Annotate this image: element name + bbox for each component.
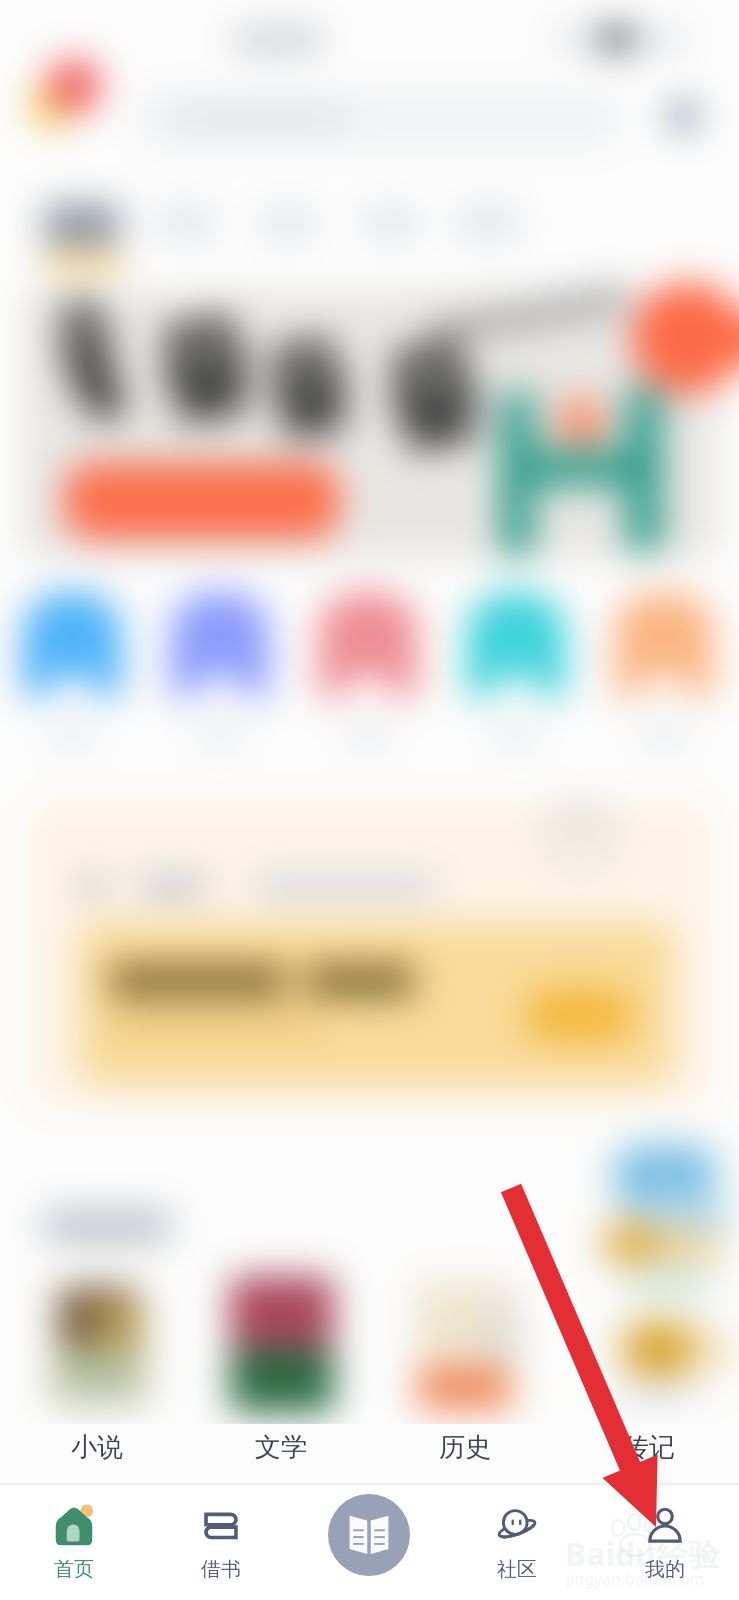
button[interactable]: 我的 (591, 1485, 739, 1600)
button[interactable]: 阅读 (328, 1494, 410, 1576)
staticText: Baidu经验 (565, 1532, 721, 1576)
button[interactable]: 借书 (147, 1485, 295, 1600)
button[interactable]: 小说 (51, 1424, 143, 1470)
staticText: 社区 (497, 1557, 537, 1582)
button[interactable]: 社区 (443, 1485, 591, 1600)
button[interactable]: 首页 (0, 1485, 147, 1600)
staticText: 小说 (71, 1431, 123, 1464)
button[interactable]: 历史 (419, 1424, 511, 1470)
button[interactable]: 文学 (235, 1424, 327, 1470)
staticText: 传记 (623, 1431, 675, 1464)
staticText: 首页 (54, 1557, 94, 1582)
staticText: jingyan.baidu.com (566, 1568, 705, 1590)
staticText: 历史 (439, 1431, 491, 1464)
staticText: 我的 (645, 1557, 685, 1582)
staticText: 文学 (255, 1431, 307, 1464)
staticText: 借书 (201, 1557, 241, 1582)
button[interactable]: 传记 (603, 1424, 695, 1470)
